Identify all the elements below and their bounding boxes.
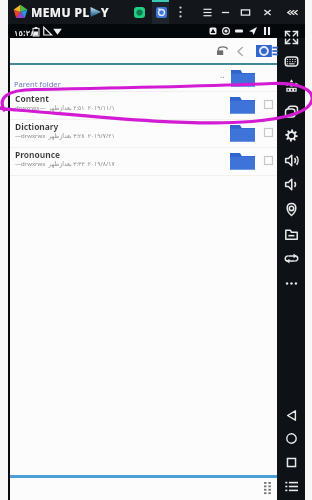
staticText: Dictionary (15, 121, 59, 132)
button[interactable]: Resize handle (258, 478, 276, 496)
button[interactable]: Minimize (216, 3, 234, 21)
button[interactable]: Maximize (236, 3, 254, 21)
button[interactable]: Close (258, 3, 276, 21)
button[interactable]: Shared folder (280, 223, 302, 245)
staticText: MEMU PL (31, 4, 90, 20)
button[interactable]: Rotate (280, 247, 302, 269)
button[interactable]: Dictionary (10, 120, 277, 148)
staticText: ١٥:٢٨ (14, 27, 35, 38)
button[interactable]: Home (280, 427, 302, 449)
staticText: drwxrwx— ٢٠١٩/١١/١ ٢:٥١ بعدازظهر (15, 104, 115, 112)
button[interactable]: Fullscreen (280, 26, 302, 48)
button[interactable]: Unlock (213, 42, 231, 60)
staticText: Content (15, 93, 49, 104)
staticText: Pronounce (15, 149, 60, 160)
button[interactable]: Content (10, 92, 277, 120)
button[interactable]: Volume down (280, 173, 302, 195)
button[interactable]: Back (231, 42, 249, 60)
button[interactable]: Volume up (280, 149, 302, 171)
button[interactable]: Collapse toolbar (282, 3, 300, 21)
button[interactable]: Task list (280, 475, 302, 497)
staticText: —drwxrwx ٢٠١٩/٨/١٧ ٣:٣٣ بعدازظهر (15, 160, 115, 168)
button[interactable]: Location (280, 198, 302, 220)
button[interactable]: Windows (280, 100, 302, 122)
button[interactable]: Camera app (156, 7, 167, 18)
button[interactable]: Parent folder (10, 65, 277, 92)
button[interactable]: More (280, 272, 302, 294)
button[interactable]: Menu (198, 3, 216, 21)
staticText: .. (220, 69, 225, 80)
button[interactable]: More options (176, 5, 185, 19)
button[interactable]: App one (134, 7, 145, 18)
button[interactable]: Selection mode (256, 45, 278, 57)
staticText: Parent folder (14, 79, 61, 89)
button[interactable]: Recents (280, 451, 302, 473)
staticText: —drwxrwx ٢٠١٩/٧/٢١ ٣:٢٨ بعدازظهر (15, 132, 115, 140)
button[interactable]: Keyboard (280, 50, 302, 72)
button[interactable]: Pronounce (10, 148, 277, 176)
button[interactable]: Settings (280, 124, 302, 146)
button[interactable]: Multi control (280, 75, 302, 97)
staticText: Y (101, 4, 109, 20)
button[interactable]: Back (280, 404, 302, 426)
